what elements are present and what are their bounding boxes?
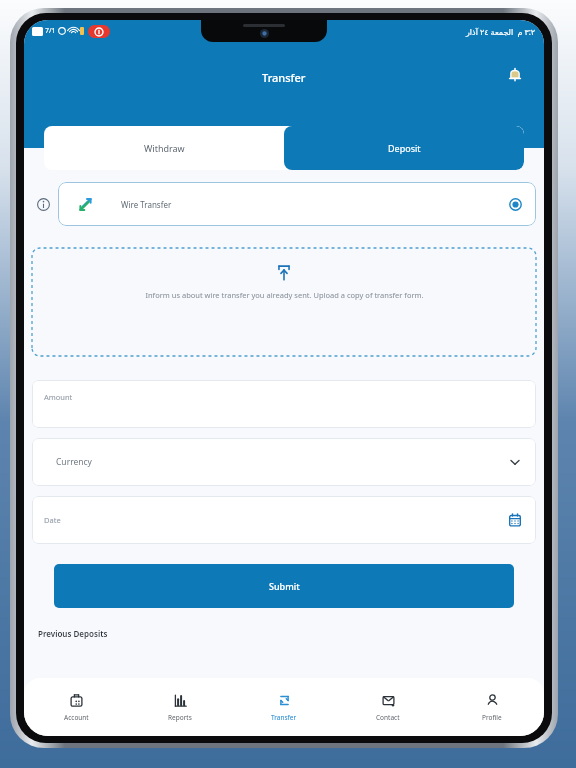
- button[interactable]: Reports: [128, 678, 232, 736]
- staticText: Inform us about wire transfer you alread…: [145, 290, 424, 300]
- staticText: Transfer: [271, 713, 297, 722]
- staticText: Deposit: [388, 142, 421, 154]
- staticText: Withdraw: [144, 142, 185, 154]
- button[interactable]: Date: [32, 496, 536, 544]
- button[interactable]: Upload transfer form: [32, 248, 536, 356]
- staticText: Date: [44, 515, 61, 525]
- button[interactable]: Submit: [54, 564, 514, 608]
- button[interactable]: Notifications: [500, 60, 530, 90]
- button[interactable]: Wire Transfer: [58, 182, 536, 226]
- button[interactable]: Info: [32, 193, 54, 215]
- staticText: Amount: [44, 392, 73, 402]
- staticText: Currency: [56, 456, 92, 468]
- button[interactable]: Deposit: [284, 126, 524, 170]
- staticText: Contact: [376, 713, 400, 722]
- staticText: ٣:٢ م الجمعة ٢٤ آذار: [466, 26, 536, 37]
- staticText: Transfer: [262, 70, 306, 85]
- staticText: Submit: [269, 580, 300, 592]
- button[interactable]: Contact: [336, 678, 440, 736]
- button[interactable]: Profile: [440, 678, 544, 736]
- button[interactable]: Account: [24, 678, 128, 736]
- staticText: 7/1: [45, 26, 56, 36]
- staticText: Reports: [168, 713, 192, 722]
- staticText: Account: [64, 713, 89, 722]
- button[interactable]: Amount: [32, 380, 536, 428]
- staticText: Profile: [482, 713, 502, 722]
- button[interactable]: Currency: [32, 438, 536, 486]
- button[interactable]: Withdraw: [44, 126, 284, 170]
- staticText: Wire Transfer: [121, 199, 172, 210]
- button[interactable]: Transfer: [232, 678, 336, 736]
- staticText: Previous Deposits: [38, 628, 108, 639]
